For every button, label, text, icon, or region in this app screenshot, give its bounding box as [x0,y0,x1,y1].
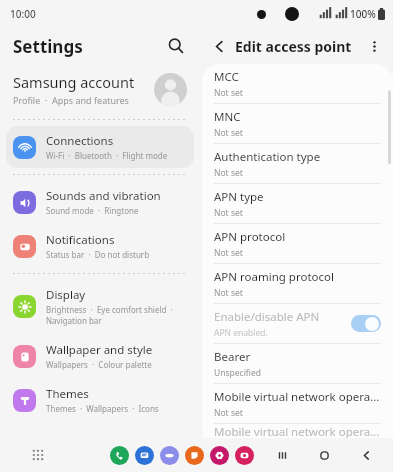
button[interactable]: Home [313,444,335,466]
button[interactable]: Mobile virtual network operator value [202,424,393,438]
staticText: Not set [214,247,243,259]
staticText: Status bar · Do not disturb [46,249,150,260]
button[interactable]: Internet [160,446,179,465]
staticText: MNC [214,109,241,125]
staticText: APN protocol [214,229,286,245]
button[interactable]: Phone [110,446,129,465]
button[interactable]: Samsung account [0,64,200,114]
button[interactable]: APN roaming protocol [202,264,393,303]
button[interactable]: Enable or disable APN [351,315,381,332]
staticText: Wallpapers · Colour palette [46,359,152,370]
staticText: Profile · Apps and features [13,94,129,106]
staticText: Not set [214,167,243,179]
button[interactable]: Sounds and vibration [6,181,194,223]
button[interactable]: Wallpaper and style [6,335,194,377]
staticText: Connections [46,133,114,149]
button[interactable]: Back [206,33,232,59]
staticText: Not set [214,287,243,299]
button[interactable]: Notes [185,446,204,465]
button[interactable]: Mobile virtual network operator type [202,384,393,423]
button[interactable]: APN protocol [202,224,393,263]
staticText: Sound mode · Ringtone [46,205,139,216]
button[interactable]: Authentication type [202,144,393,183]
staticText: APN enabled. [214,327,268,339]
button[interactable]: MNC [202,104,393,143]
staticText: Not set [214,87,243,99]
staticText: Unspecified [214,367,261,379]
button[interactable]: Camera [235,446,254,465]
staticText: Display [46,287,86,303]
staticText: Mobile virtual network operator value [214,424,381,438]
staticText: Wallpaper and style [46,342,153,358]
button[interactable]: Themes [6,379,194,421]
button[interactable]: Gallery [210,446,229,465]
button[interactable]: APN type [202,184,393,223]
button[interactable]: More options [361,33,387,59]
staticText: Bearer [214,349,251,365]
staticText: Not set [214,407,243,419]
staticText: Authentication type [214,149,321,165]
staticText: 10:00 [10,7,36,21]
staticText: Not set [214,127,243,139]
staticText: APN type [214,189,264,205]
staticText: Enable/disable APN [214,309,320,325]
staticText: Settings [13,35,83,58]
staticText: Samsung account [13,72,135,92]
button[interactable]: All apps [26,443,50,467]
staticText: Edit access point [235,37,352,56]
button[interactable]: Search [163,33,189,59]
button[interactable]: Display [6,280,194,333]
staticText: Mobile virtual network operator type [214,389,381,405]
staticText: APN roaming protocol [214,269,334,285]
staticText: MCC [214,69,239,85]
button[interactable]: Notifications [6,225,194,267]
button[interactable]: Recents [271,444,293,466]
staticText: Themes · Wallpapers · Icons [46,403,159,414]
staticText: Themes [46,386,89,402]
staticText: 100% [350,7,376,21]
staticText: Wi-Fi · Bluetooth · Flight mode [46,150,168,161]
button[interactable]: Connections [6,126,194,168]
button[interactable]: Enable/disable APN [202,304,393,343]
staticText: Sounds and vibration [46,188,161,204]
button[interactable]: MCC [202,64,393,103]
button[interactable]: Back [355,444,377,466]
button[interactable]: Bearer [202,344,393,383]
staticText: Notifications [46,232,115,248]
staticText: Brightness · Eye comfort shield · Naviga… [46,304,173,326]
staticText: Not set [214,207,243,219]
button[interactable]: Messages [135,446,154,465]
